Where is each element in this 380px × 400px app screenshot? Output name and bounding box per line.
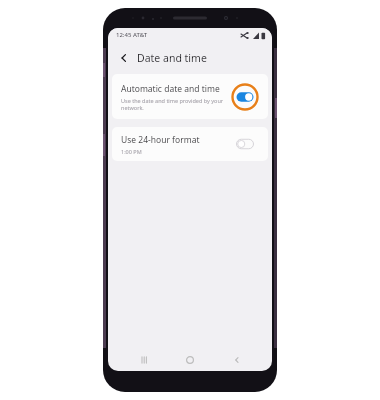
staticText: 1:00 PM bbox=[121, 148, 142, 155]
staticText: Automatic date and time bbox=[121, 83, 220, 95]
button[interactable]: Use 24-hour format bbox=[112, 127, 268, 161]
staticText: Date and time bbox=[137, 51, 207, 65]
button[interactable]: Back bbox=[226, 349, 248, 371]
button[interactable]: Home bbox=[179, 349, 201, 371]
staticText: network. bbox=[121, 104, 144, 111]
staticText: Use the date and time provided by your bbox=[121, 97, 224, 104]
staticText: 12:45 AT&T bbox=[116, 31, 148, 39]
button[interactable]: Back bbox=[115, 49, 133, 67]
button[interactable]: Automatic date and time bbox=[112, 74, 268, 119]
staticText: Use 24-hour format bbox=[121, 134, 200, 146]
button[interactable]: Recents bbox=[133, 349, 155, 371]
button[interactable]: Toggle off bbox=[230, 129, 260, 159]
button[interactable]: Toggle on bbox=[230, 82, 260, 112]
